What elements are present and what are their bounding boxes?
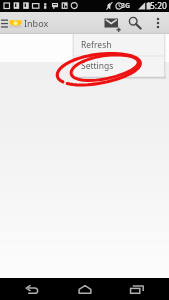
staticText: Inbox (24, 17, 49, 29)
button[interactable]: Inbox (0, 12, 101, 34)
button[interactable]: Compose (101, 12, 123, 34)
button[interactable]: Settings (74, 55, 164, 77)
staticText: 3G (121, 1, 131, 11)
button[interactable]: Back (12, 278, 52, 300)
button[interactable]: Refresh (74, 34, 164, 55)
button[interactable]: More options (147, 12, 169, 34)
staticText: Settings (81, 60, 114, 72)
button[interactable]: Recent apps (117, 278, 157, 300)
staticText: Refresh (81, 39, 112, 51)
staticText: 5:20 (150, 0, 167, 12)
button[interactable]: Search (123, 12, 147, 34)
button[interactable]: Home (65, 278, 105, 300)
